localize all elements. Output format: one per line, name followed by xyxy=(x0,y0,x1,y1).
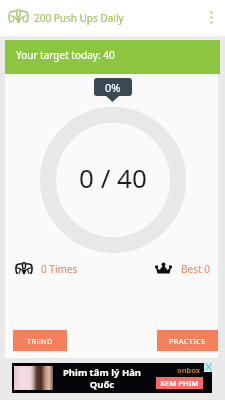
staticText: 200 Push Ups Daily xyxy=(34,11,124,25)
staticText: 0 Times xyxy=(41,262,78,276)
staticText: onbox xyxy=(177,365,201,375)
button[interactable]: Close ad xyxy=(204,362,213,372)
staticText: Your target today: 40 xyxy=(16,48,115,62)
button[interactable]: PRACTICE xyxy=(157,330,218,351)
button[interactable]: TREND xyxy=(13,330,67,351)
button[interactable]: Phim tâm lý Hàn Quốc xyxy=(12,363,212,393)
button[interactable]: 0 Times xyxy=(15,262,78,276)
staticText: PRACTICE xyxy=(169,336,206,346)
staticText: 0% xyxy=(105,80,121,95)
staticText: TREND xyxy=(27,336,53,346)
button[interactable]: XEM PHIM xyxy=(156,377,203,389)
staticText: Phim tâm lý Hàn Quốc xyxy=(62,366,142,390)
staticText: 0 / 40 xyxy=(79,160,147,195)
staticText: Best 0 xyxy=(181,262,210,276)
button[interactable]: More options xyxy=(197,0,225,34)
button[interactable]: Best 0 xyxy=(155,262,210,276)
staticText: XEM PHIM xyxy=(160,378,199,388)
